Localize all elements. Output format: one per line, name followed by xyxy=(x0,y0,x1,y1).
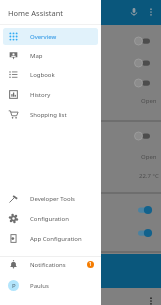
staticText: Notifications xyxy=(30,261,66,269)
staticText: 1 xyxy=(89,261,92,268)
staticText: Overview xyxy=(30,33,57,41)
staticText: Map xyxy=(30,52,43,60)
staticText: Open xyxy=(141,153,157,161)
button[interactable]: Toggle xyxy=(133,35,153,47)
button[interactable]: P xyxy=(3,277,98,294)
button[interactable]: More options xyxy=(144,294,157,305)
button[interactable]: Developer Tools xyxy=(3,190,98,207)
staticText: History xyxy=(30,91,51,99)
staticText: Configuration xyxy=(30,215,69,223)
button[interactable]: Voice assistant xyxy=(124,2,144,22)
button[interactable]: App Configuration xyxy=(3,230,98,247)
staticText: Developer Tools xyxy=(30,195,75,203)
button[interactable]: Overview xyxy=(3,28,98,45)
staticText: 22.7 °C xyxy=(139,172,159,180)
staticText: App Configuration xyxy=(30,235,82,243)
button[interactable]: Map xyxy=(3,47,98,64)
button[interactable]: Toggle xyxy=(133,77,153,89)
button[interactable]: Toggle xyxy=(133,204,153,216)
button[interactable]: Configuration xyxy=(3,210,98,227)
staticText: Paulus xyxy=(30,282,49,290)
button[interactable]: Shopping list xyxy=(3,106,98,123)
staticText: Open xyxy=(141,97,157,105)
staticText: Logbook xyxy=(30,71,55,79)
button[interactable]: Logbook xyxy=(3,66,98,83)
staticText: Home Assistant xyxy=(8,8,64,18)
button[interactable]: History xyxy=(3,86,98,103)
button[interactable]: Toggle xyxy=(133,130,153,142)
staticText: Shopping list xyxy=(30,111,67,119)
button[interactable]: Toggle xyxy=(133,57,153,69)
button[interactable]: Notifications xyxy=(3,256,98,273)
button[interactable]: More options xyxy=(141,2,161,22)
button[interactable]: Toggle xyxy=(133,227,153,239)
staticText: P xyxy=(12,282,16,290)
